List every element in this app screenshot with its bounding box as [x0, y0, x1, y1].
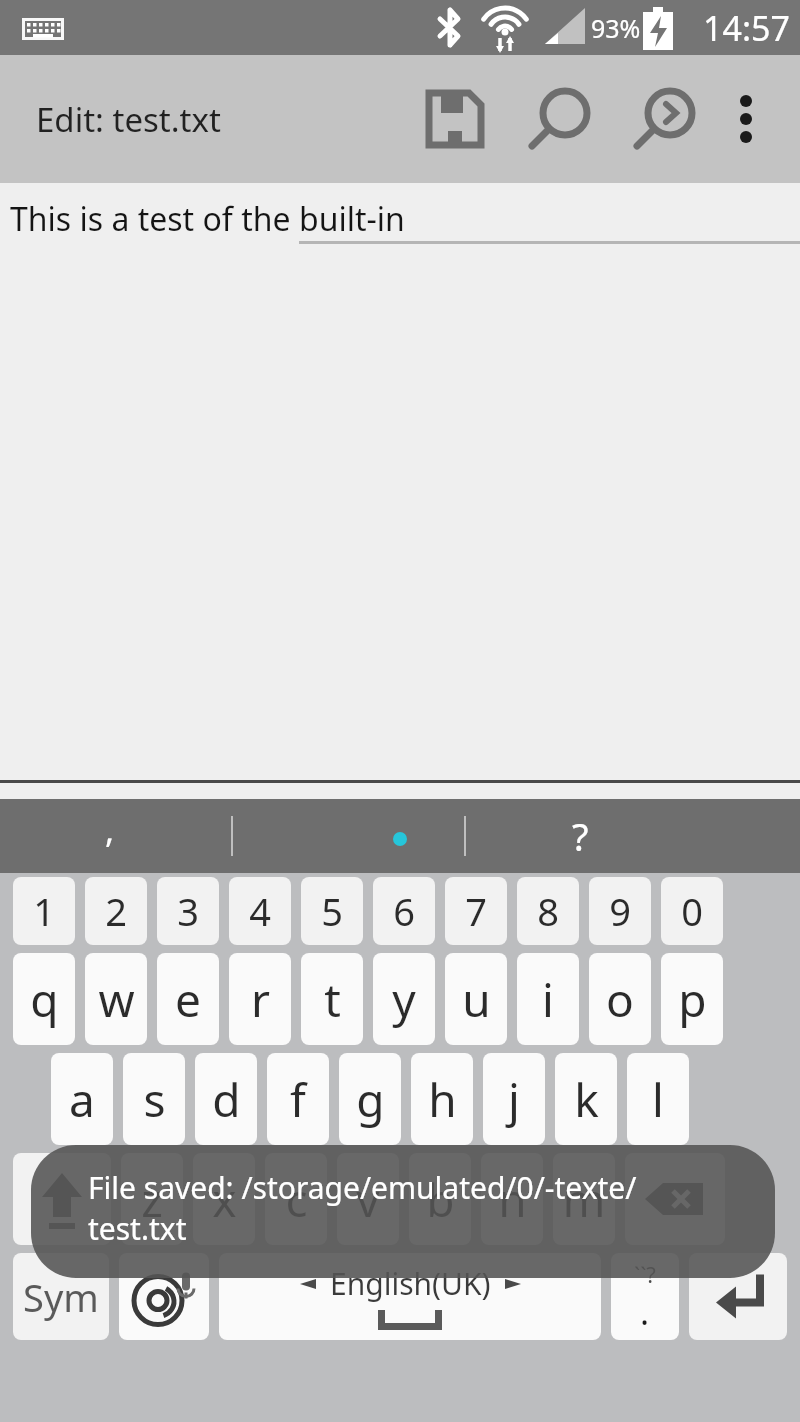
staticText: r	[251, 968, 270, 1031]
staticText: d	[212, 1068, 241, 1131]
staticText: 1	[33, 885, 55, 937]
staticText: p	[678, 968, 707, 1031]
staticText: z	[141, 1168, 163, 1231]
button[interactable]: p	[661, 953, 723, 1045]
button[interactable]: u	[445, 953, 507, 1045]
button[interactable]: g	[339, 1053, 401, 1145]
button[interactable]: Shift	[13, 1153, 111, 1245]
button[interactable]: 1	[13, 877, 75, 945]
button[interactable]: Find next	[622, 76, 708, 162]
staticText: Sym	[23, 1271, 99, 1323]
button[interactable]: ``?	[611, 1253, 679, 1340]
staticText: English(UK)	[330, 1263, 491, 1304]
staticText: u	[462, 968, 491, 1031]
staticText: f	[290, 1068, 306, 1131]
button[interactable]: c	[265, 1153, 327, 1245]
staticText: 7	[465, 885, 487, 937]
staticText: File saved: /storage/emulated/0/-texte/	[88, 1167, 637, 1208]
staticText: Edit: test.txt	[36, 97, 221, 142]
button[interactable]: Voice input	[119, 1253, 209, 1340]
button[interactable]	[0, 183, 800, 783]
button[interactable]: More options	[706, 79, 786, 159]
staticText: 93%	[591, 11, 641, 45]
staticText: j	[508, 1068, 520, 1131]
button[interactable]: r	[229, 953, 291, 1045]
button[interactable]: 9	[589, 877, 651, 945]
staticText: h	[428, 1068, 457, 1131]
staticText: g	[356, 1068, 385, 1131]
staticText: q	[30, 968, 59, 1031]
button[interactable]: f	[267, 1053, 329, 1145]
button[interactable]: t	[301, 953, 363, 1045]
staticText: y	[392, 968, 416, 1031]
button[interactable]	[0, 799, 116, 873]
staticText: a	[69, 1068, 95, 1131]
staticText: k	[574, 1068, 599, 1131]
button[interactable]: q	[13, 953, 75, 1045]
staticText: m	[562, 1168, 606, 1231]
staticText: 6	[393, 885, 415, 937]
button[interactable]: Save	[412, 76, 498, 162]
staticText: built-in	[299, 197, 405, 241]
button[interactable]: 7	[445, 877, 507, 945]
button[interactable]: 8	[517, 877, 579, 945]
button[interactable]: Enter	[689, 1253, 787, 1340]
staticText: 0	[681, 885, 703, 937]
staticText: 9	[609, 885, 631, 937]
staticText: This is a test of the	[10, 197, 299, 241]
staticText: e	[175, 968, 201, 1031]
staticText: ,	[105, 807, 115, 853]
staticText: w	[98, 968, 135, 1031]
button[interactable]: z	[121, 1153, 183, 1245]
staticText: 4	[249, 885, 271, 937]
staticText: v	[356, 1168, 380, 1231]
button[interactable]: h	[411, 1053, 473, 1145]
button[interactable]: a	[51, 1053, 113, 1145]
button[interactable]: d	[195, 1053, 257, 1145]
button[interactable]: 0	[661, 877, 723, 945]
staticText: o	[606, 968, 634, 1031]
staticText: 14:57	[703, 5, 790, 51]
button[interactable]	[545, 799, 745, 873]
staticText: x	[212, 1168, 237, 1231]
staticText: s	[143, 1068, 166, 1131]
button[interactable]: Search	[517, 76, 603, 162]
staticText: 8	[537, 885, 559, 937]
button[interactable]: 6	[373, 877, 435, 945]
staticText: t	[324, 968, 341, 1031]
staticText: ``?	[634, 1259, 656, 1289]
button[interactable]: 2	[85, 877, 147, 945]
button[interactable]: j	[483, 1053, 545, 1145]
staticText: .	[640, 1289, 650, 1335]
button[interactable]: i	[517, 953, 579, 1045]
button[interactable]: m	[553, 1153, 615, 1245]
button[interactable]: Space	[219, 1253, 601, 1340]
button[interactable]: 5	[301, 877, 363, 945]
button[interactable]: k	[555, 1053, 617, 1145]
button[interactable]: l	[627, 1053, 689, 1145]
button[interactable]: x	[193, 1153, 255, 1245]
staticText: 2	[105, 885, 127, 937]
staticText: c	[285, 1168, 308, 1231]
button[interactable]: e	[157, 953, 219, 1045]
staticText: b	[426, 1168, 455, 1231]
button[interactable]: n	[481, 1153, 543, 1245]
button[interactable]	[285, 799, 515, 873]
button[interactable]: v	[337, 1153, 399, 1245]
staticText: test.txt	[88, 1208, 187, 1249]
button[interactable]: s	[123, 1053, 185, 1145]
button[interactable]: 3	[157, 877, 219, 945]
button[interactable]: b	[409, 1153, 471, 1245]
button[interactable]: Sym	[13, 1253, 109, 1340]
staticText: ?	[572, 810, 589, 862]
button[interactable]: w	[85, 953, 147, 1045]
button[interactable]: 4	[229, 877, 291, 945]
button[interactable]: Backspace	[625, 1153, 725, 1245]
staticText: n	[498, 1168, 527, 1231]
staticText: 3	[177, 885, 199, 937]
button[interactable]: y	[373, 953, 435, 1045]
staticText: l	[652, 1068, 664, 1131]
staticText: i	[542, 968, 554, 1031]
button[interactable]: o	[589, 953, 651, 1045]
staticText: 5	[321, 885, 343, 937]
